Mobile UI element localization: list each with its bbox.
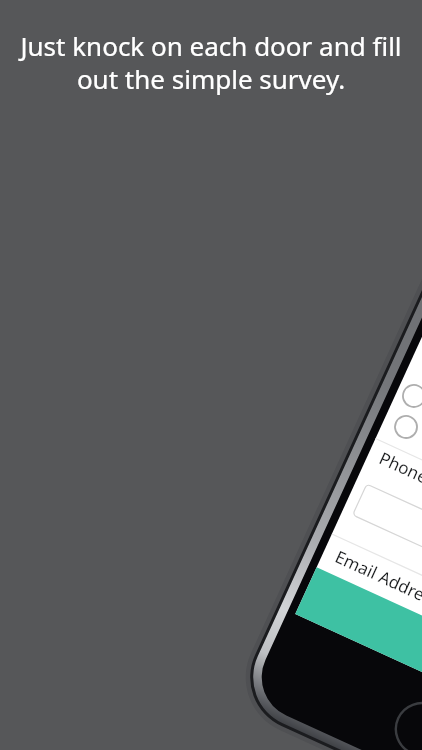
staticText: Just knock on each door and fill out the… xyxy=(14,28,408,97)
